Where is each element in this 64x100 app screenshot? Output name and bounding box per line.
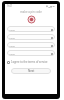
button[interactable]: Label	[7, 50, 55, 56]
button[interactable]: Label	[7, 26, 55, 32]
staticText: Label	[9, 44, 16, 47]
button[interactable]: Label	[7, 42, 55, 48]
staticText: ● ▂▄ ▬	[46, 5, 55, 8]
button[interactable]: Label	[7, 34, 55, 40]
staticText: I agree to the terms of service	[11, 60, 48, 64]
button[interactable]: I agree to the terms of service	[7, 60, 55, 64]
staticText: 9:41	[7, 4, 13, 8]
staticText: Label	[9, 28, 16, 31]
staticText: make a pin code	[5, 10, 57, 14]
staticText: Next	[28, 69, 35, 73]
button[interactable]: Next	[11, 68, 51, 74]
staticText: Label	[9, 36, 16, 39]
staticText: Label	[9, 52, 16, 55]
